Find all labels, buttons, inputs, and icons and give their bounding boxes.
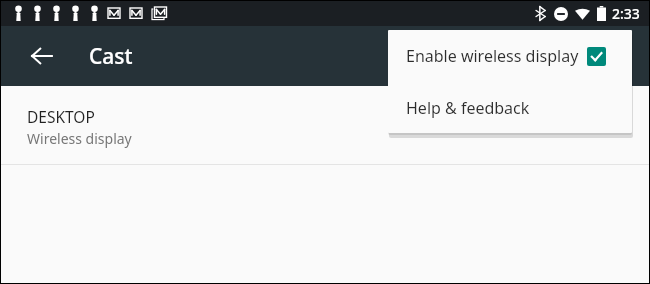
staticText: Cast bbox=[89, 42, 133, 71]
staticText: DESKTOP bbox=[27, 106, 95, 127]
staticText: Help & feedback bbox=[406, 97, 530, 119]
staticText: 2:33 bbox=[612, 4, 640, 23]
button[interactable]: DESKTOP bbox=[1, 86, 649, 164]
button[interactable]: Enable wireless display bbox=[388, 30, 632, 82]
staticText: Wireless display bbox=[27, 129, 132, 148]
staticText: Enable wireless display bbox=[406, 45, 579, 67]
button[interactable]: Navigate up bbox=[18, 32, 66, 80]
button[interactable]: Help & feedback bbox=[388, 82, 632, 133]
button[interactable]: Enable wireless display checkbox bbox=[587, 47, 606, 66]
